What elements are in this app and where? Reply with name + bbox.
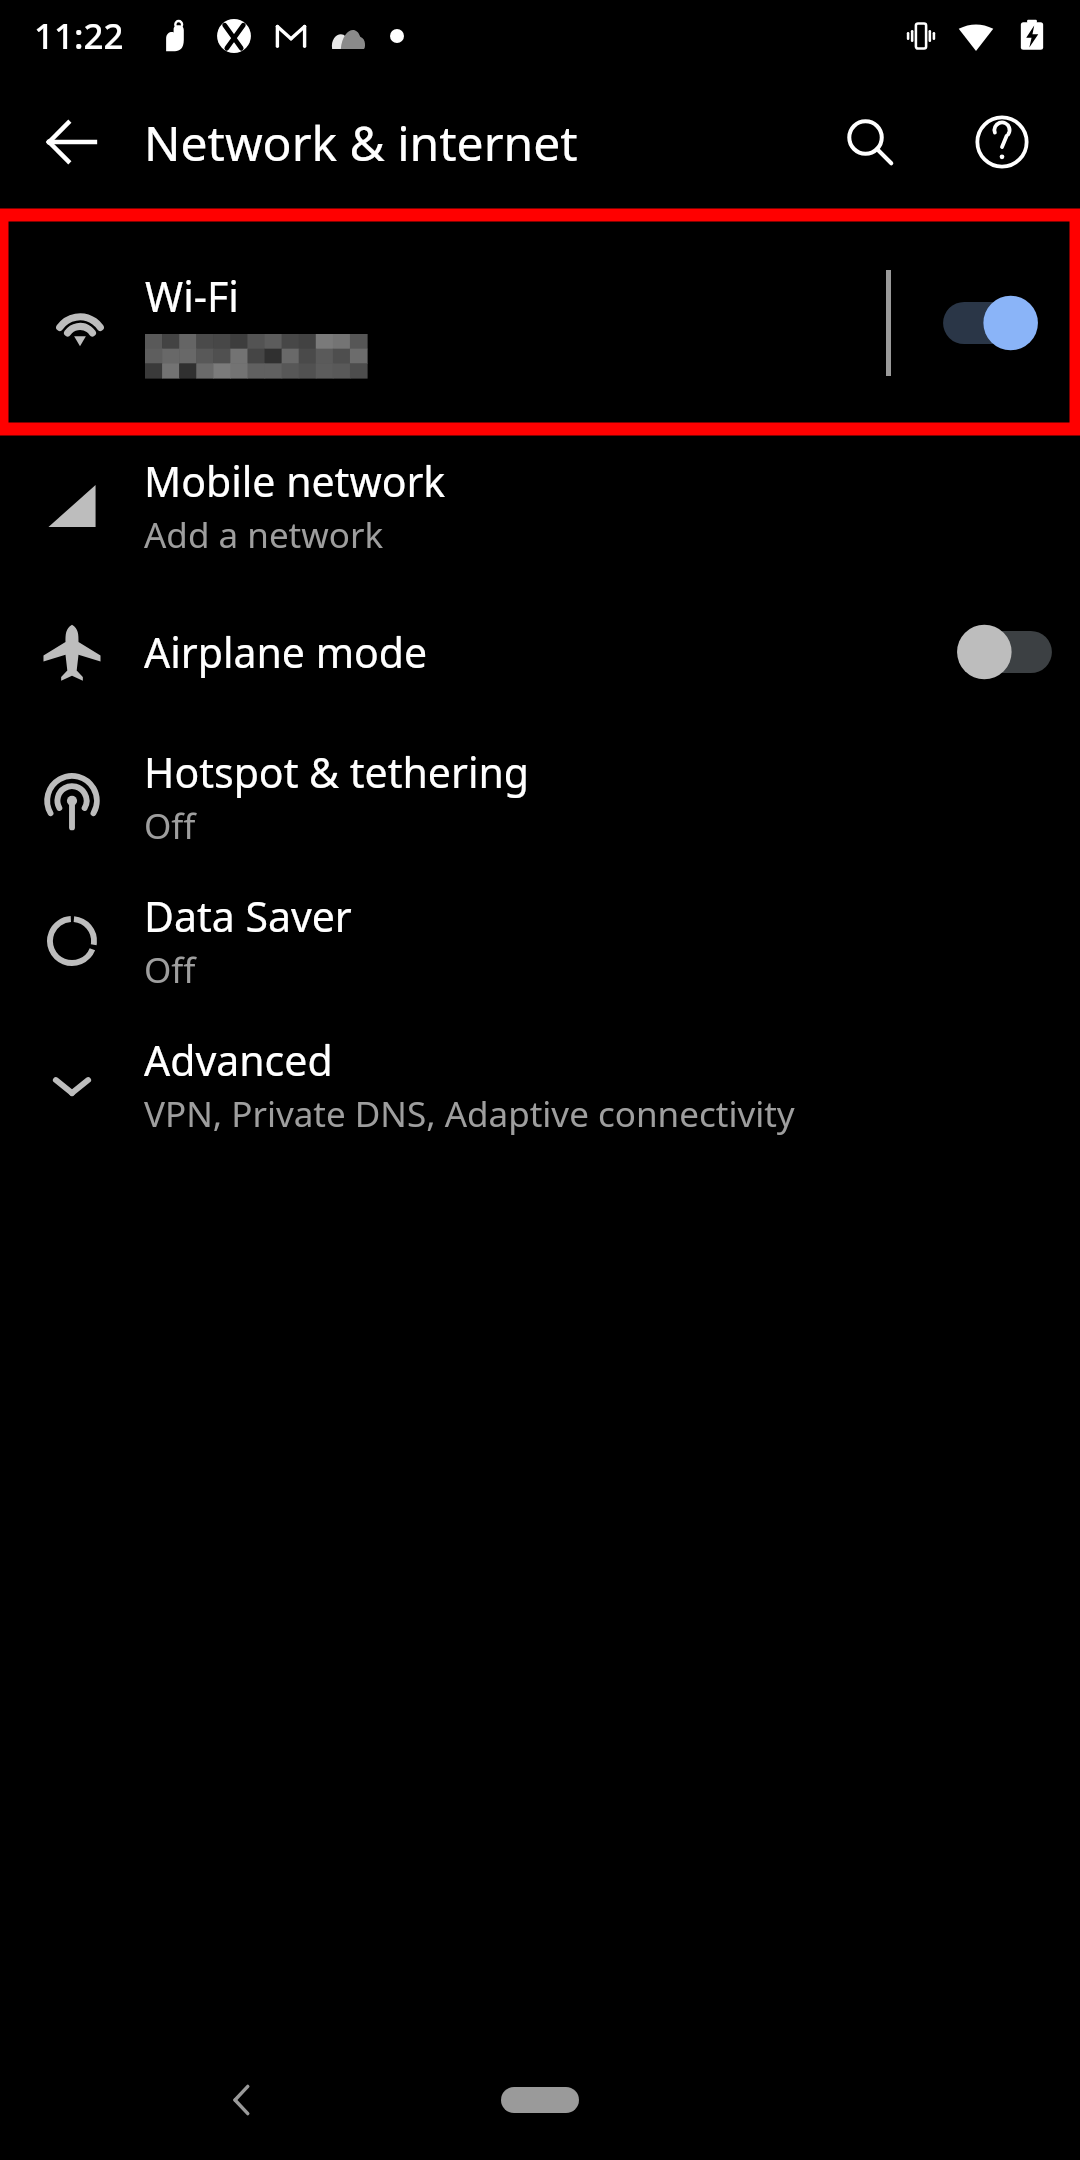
staticText: Wi-Fi xyxy=(145,268,239,324)
button[interactable]: Back xyxy=(0,72,144,212)
button[interactable]: Help xyxy=(936,76,1068,208)
button[interactable]: Airplane mode xyxy=(0,578,1080,725)
button[interactable]: Hotspot & tethering xyxy=(0,725,1080,869)
staticText: Off xyxy=(144,946,196,994)
staticText: VPN, Private DNS, Adaptive connectivity xyxy=(144,1090,795,1138)
staticText: Network & internet xyxy=(144,110,578,175)
button[interactable]: Data Saver xyxy=(0,869,1080,1013)
staticText: Mobile network xyxy=(144,453,446,509)
button[interactable]: Search xyxy=(804,76,936,208)
button[interactable]: Airplane mode off xyxy=(954,621,1056,683)
staticText: Data Saver xyxy=(144,888,352,944)
staticText: Airplane mode xyxy=(144,624,428,680)
button[interactable]: Wi-Fi on xyxy=(939,292,1041,354)
button[interactable]: Wi-Fi xyxy=(15,224,1065,422)
staticText: Hotspot & tethering xyxy=(144,744,530,800)
button[interactable]: Home xyxy=(501,2087,579,2113)
staticText: Add a network xyxy=(144,511,384,559)
button[interactable]: Advanced xyxy=(0,1013,1080,1157)
staticText: Advanced xyxy=(144,1032,333,1088)
button[interactable]: Mobile network xyxy=(0,434,1080,578)
staticText: Off xyxy=(144,802,196,850)
button[interactable]: Back xyxy=(208,2065,278,2135)
staticText: 11:22 xyxy=(34,12,124,60)
